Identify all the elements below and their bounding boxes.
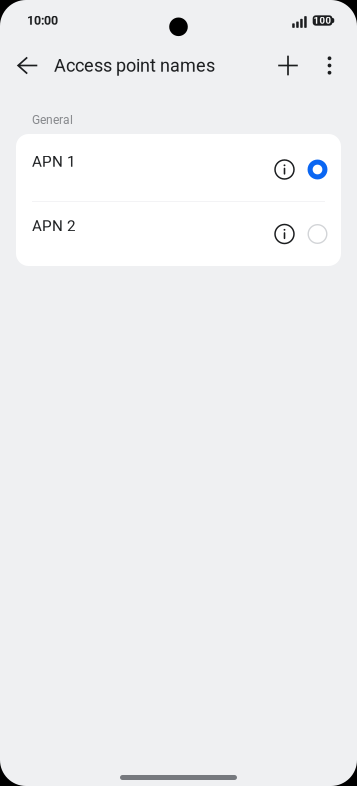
button[interactable]: APN 2 details <box>268 207 301 261</box>
staticText: 100 <box>314 15 332 26</box>
staticText: APN 1 <box>32 153 76 170</box>
button[interactable]: APN 1 <box>16 134 341 201</box>
button[interactable]: Add APN <box>264 42 312 89</box>
staticText: APN 2 <box>32 217 76 235</box>
button[interactable]: More options <box>314 42 345 89</box>
staticText: Access point names <box>54 55 215 76</box>
button[interactable]: Select APN 1 <box>301 142 334 196</box>
button[interactable]: APN 2 <box>16 202 341 266</box>
staticText: General <box>32 113 73 127</box>
button[interactable]: Select APN 2 <box>301 207 334 261</box>
button[interactable]: Back <box>8 42 47 89</box>
staticText: 10:00 <box>27 13 58 28</box>
button[interactable]: APN 1 details <box>268 142 301 196</box>
